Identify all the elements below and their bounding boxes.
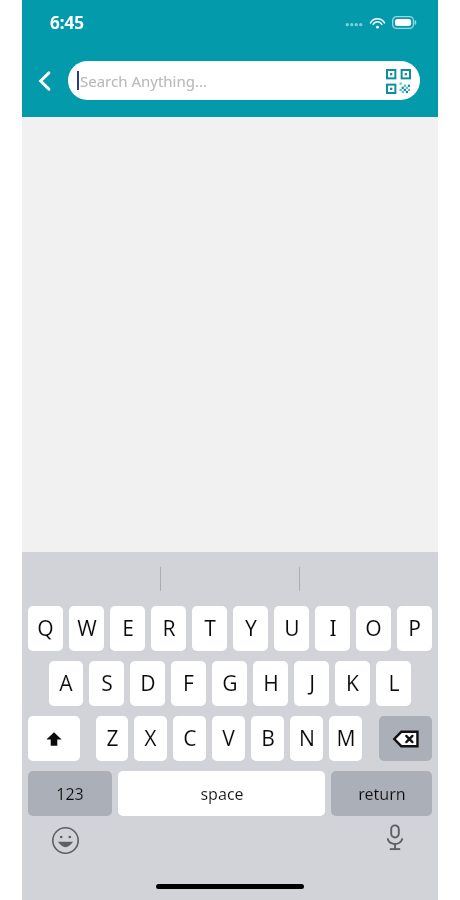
staticText: K — [346, 669, 359, 698]
staticText: X — [144, 724, 157, 753]
button[interactable]: S — [89, 661, 124, 706]
button[interactable]: B — [251, 716, 284, 761]
staticText: W — [77, 614, 97, 643]
staticText: B — [261, 724, 275, 753]
button[interactable]: U — [274, 606, 309, 651]
button[interactable]: E — [110, 606, 145, 651]
button[interactable]: I — [315, 606, 350, 651]
staticText: Y — [245, 614, 257, 643]
button[interactable]: R — [151, 606, 186, 651]
staticText: L — [388, 669, 400, 698]
staticText: Z — [106, 724, 119, 753]
staticText: O — [365, 614, 382, 643]
button[interactable]: C — [173, 716, 206, 761]
staticText: T — [204, 614, 216, 643]
staticText: I — [329, 614, 337, 643]
button[interactable]: F — [171, 661, 206, 706]
staticText: C — [183, 724, 197, 753]
staticText: space — [200, 783, 244, 805]
button[interactable]: Backspace — [379, 716, 432, 761]
button[interactable]: N — [290, 716, 323, 761]
button[interactable]: Scan QR code — [381, 64, 415, 98]
button[interactable]: 123 — [28, 771, 112, 816]
staticText: H — [263, 669, 279, 698]
staticText: E — [122, 614, 134, 643]
staticText: F — [183, 669, 194, 698]
staticText: 6:45 — [50, 11, 84, 34]
staticText: 123 — [56, 783, 84, 805]
staticText: A — [59, 669, 73, 698]
button[interactable]: Emoji keyboard — [48, 823, 82, 857]
staticText: Search Anything... — [80, 71, 381, 91]
staticText: G — [222, 669, 238, 698]
button[interactable]: A — [49, 661, 83, 706]
button[interactable]: V — [212, 716, 245, 761]
button[interactable]: X — [134, 716, 167, 761]
button[interactable]: W — [69, 606, 104, 651]
button[interactable]: Search Anything... — [68, 61, 420, 100]
button[interactable]: Voice input — [378, 820, 412, 854]
staticText: D — [140, 669, 156, 698]
staticText: P — [408, 614, 421, 643]
staticText: return — [358, 783, 406, 805]
button[interactable]: Back — [22, 58, 68, 104]
button[interactable]: K — [335, 661, 370, 706]
staticText: R — [162, 614, 176, 643]
button[interactable]: T — [192, 606, 227, 651]
button[interactable]: Y — [233, 606, 268, 651]
button[interactable]: L — [376, 661, 411, 706]
button[interactable]: G — [212, 661, 247, 706]
button[interactable]: Shift — [28, 716, 80, 761]
button[interactable]: return — [331, 771, 432, 816]
button[interactable]: D — [130, 661, 165, 706]
button[interactable]: P — [397, 606, 432, 651]
staticText: U — [284, 614, 300, 643]
staticText: Q — [37, 614, 54, 643]
button[interactable]: O — [356, 606, 391, 651]
button[interactable]: Z — [96, 716, 128, 761]
button[interactable]: Q — [28, 606, 63, 651]
staticText: J — [309, 669, 315, 698]
button[interactable]: J — [294, 661, 329, 706]
staticText: V — [222, 724, 235, 753]
staticText: M — [336, 724, 356, 753]
button[interactable]: M — [329, 716, 362, 761]
button[interactable]: H — [253, 661, 288, 706]
staticText: S — [101, 669, 113, 698]
staticText: N — [299, 724, 315, 753]
button[interactable]: space — [118, 771, 325, 816]
